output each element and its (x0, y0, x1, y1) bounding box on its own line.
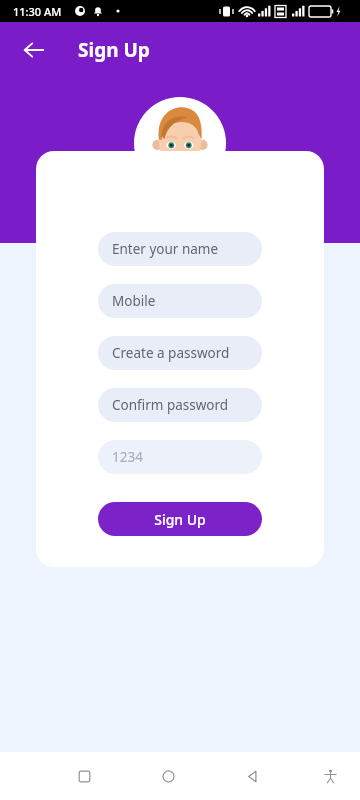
button[interactable]: Home (144, 752, 192, 800)
staticText: 1234 (112, 448, 143, 466)
button[interactable]: Enter your name (98, 232, 262, 266)
button[interactable]: Accessibility (306, 752, 354, 800)
button[interactable]: Mobile (98, 284, 262, 318)
button[interactable]: Confirm password (98, 388, 262, 422)
staticText: Create a password (112, 344, 230, 362)
button[interactable]: Recent apps (60, 752, 108, 800)
button[interactable]: Back (228, 752, 276, 800)
button[interactable]: Create a password (98, 336, 262, 370)
button[interactable]: Sign Up (98, 502, 262, 536)
staticText: Sign Up (78, 37, 150, 63)
staticText: Mobile (112, 292, 156, 310)
button[interactable]: 1234 (98, 440, 262, 474)
staticText: Confirm password (112, 396, 229, 414)
staticText: 11:30 AM (13, 4, 62, 19)
staticText: Enter your name (112, 240, 219, 258)
button[interactable]: Back (12, 28, 56, 72)
staticText: Sign Up (154, 510, 206, 529)
